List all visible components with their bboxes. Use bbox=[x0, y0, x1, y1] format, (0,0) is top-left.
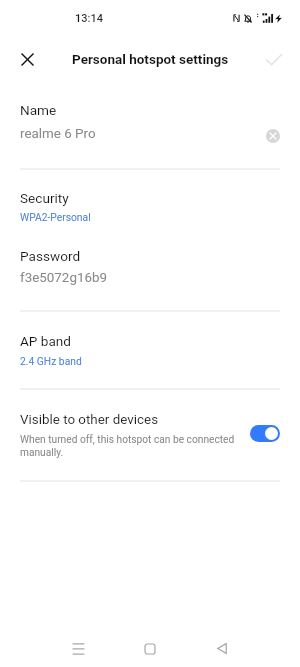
staticText: AP band bbox=[20, 333, 72, 349]
button[interactable]: Visible to other devices, on bbox=[250, 425, 280, 442]
staticText: Password bbox=[20, 248, 81, 264]
button[interactable]: AP band bbox=[0, 324, 300, 376]
staticText: realme 6 Pro bbox=[20, 126, 96, 142]
staticText: 13:14 bbox=[75, 12, 103, 25]
staticText: f3e5072g16b9 bbox=[20, 270, 107, 286]
staticText: Personal hotspot settings bbox=[72, 51, 229, 67]
button[interactable]: Security bbox=[0, 182, 300, 232]
staticText: Security bbox=[20, 190, 69, 206]
staticText: When turned off, this hotspot can be con… bbox=[20, 434, 238, 459]
button[interactable]: Home bbox=[125, 624, 174, 667]
staticText: Name bbox=[20, 102, 57, 118]
button[interactable]: Clear name bbox=[266, 129, 280, 143]
button[interactable]: Name bbox=[0, 92, 300, 152]
button[interactable]: Done bbox=[255, 41, 292, 78]
button[interactable]: Visible to other devices bbox=[0, 402, 300, 474]
staticText: WPA2-Personal bbox=[20, 211, 91, 223]
staticText: 2.4 GHz band bbox=[20, 355, 82, 367]
button[interactable]: Password bbox=[0, 240, 300, 295]
button[interactable]: Back bbox=[197, 624, 246, 667]
button[interactable]: Close bbox=[9, 41, 46, 78]
button[interactable]: Recent apps bbox=[54, 624, 103, 667]
staticText: Visible to other devices bbox=[20, 412, 159, 428]
